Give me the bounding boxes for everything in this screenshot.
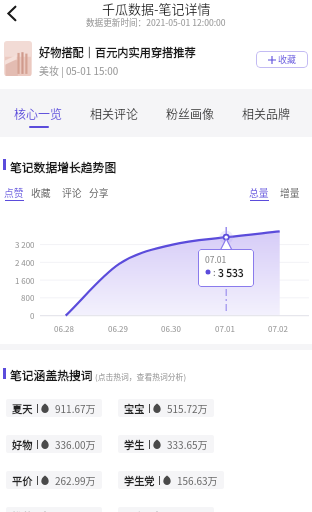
button[interactable]: 分享 [89,186,109,200]
button[interactable]: 夏天 [6,399,102,417]
staticText: (点击热词，查看热词分析) [95,371,187,382]
staticText: 收藏 [31,186,51,200]
staticText: 增量 [280,186,300,200]
staticText: 相关评论 [90,105,139,122]
button[interactable]: 增量 [280,186,300,200]
staticText: 06.30 [161,323,181,335]
staticText: 宝宝 [124,401,145,416]
staticText: 1 600 [15,275,35,287]
staticText: 好物 [12,437,33,452]
staticText: 3 533 [218,265,244,279]
staticText: 好物搭配｜百元内实用穿搭推荐 [39,44,196,60]
staticText: 07.01 [205,253,227,265]
staticText: 3 200 [15,239,35,251]
staticText: 评论 [62,186,82,200]
staticText: 07.01 [215,323,235,335]
staticText: 粉丝画像 [166,105,215,122]
staticText: 07.02 [268,323,288,335]
staticText: 笔记数据增长趋势图 [10,158,117,175]
staticText: 美妆 | 05-01 15:00 [39,64,119,78]
button[interactable]: Back [0,0,26,26]
staticText: 262.99万 [55,473,96,487]
staticText: 333.65万 [167,437,208,451]
button[interactable]: 好物 [6,435,102,453]
staticText: 156.63万 [177,473,218,487]
button[interactable]: 相关品牌 [228,89,304,137]
button[interactable]: 总量 [249,186,269,201]
staticText: 336.00万 [55,437,96,451]
staticText: 平价 [12,473,33,488]
button[interactable]: 平价 [6,471,102,489]
button[interactable]: 宝宝 [118,399,214,417]
staticText: 分享 [89,186,109,200]
button[interactable]: 相关评论 [76,89,152,137]
staticText: 2 400 [15,257,35,269]
button[interactable]: 收藏 [31,186,51,200]
staticText: 收藏 [278,53,297,66]
button[interactable]: 评论 [62,186,82,200]
staticText: 千瓜数据-笔记详情 [102,0,211,18]
staticText: 0 [30,310,35,322]
staticText: 总量 [249,186,269,200]
staticText: 911.67万 [55,401,96,415]
staticText: : [213,265,216,279]
button[interactable]: 推荐 [6,507,102,512]
staticText: 夏天 [12,401,33,416]
staticText: 点赞 [4,186,24,200]
button[interactable]: 粉丝画像 [152,89,228,137]
staticText: 06.29 [108,323,128,335]
staticText: 数据更新时间：2021-05-01 12:00:00 [86,16,226,28]
staticText: 相关品牌 [242,105,291,122]
staticText: 学生 [124,437,145,452]
staticText: 515.72万 [167,401,208,415]
staticText: 笔记涵盖热搜词 [10,366,93,383]
button[interactable]: 点赞 [4,186,24,201]
button[interactable]: 学生党 [118,471,224,489]
staticText: 学生党 [124,473,155,488]
staticText: 核心一览 [14,105,63,122]
button[interactable]: 核心一览 [0,89,76,137]
staticText: 800 [21,292,35,304]
staticText: 推荐 [12,509,33,512]
staticText: 06.28 [54,323,74,335]
button[interactable]: 收藏 [256,51,308,68]
button[interactable]: 学生 [118,435,214,453]
